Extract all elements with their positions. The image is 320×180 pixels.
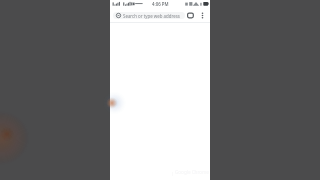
button[interactable]: Switch tabs xyxy=(185,10,196,21)
button[interactable]: More options xyxy=(197,10,208,21)
staticText: 4:06 PM xyxy=(152,1,169,7)
button[interactable]: Search or type web address xyxy=(113,12,185,19)
staticText: Search or type web address xyxy=(123,13,180,19)
